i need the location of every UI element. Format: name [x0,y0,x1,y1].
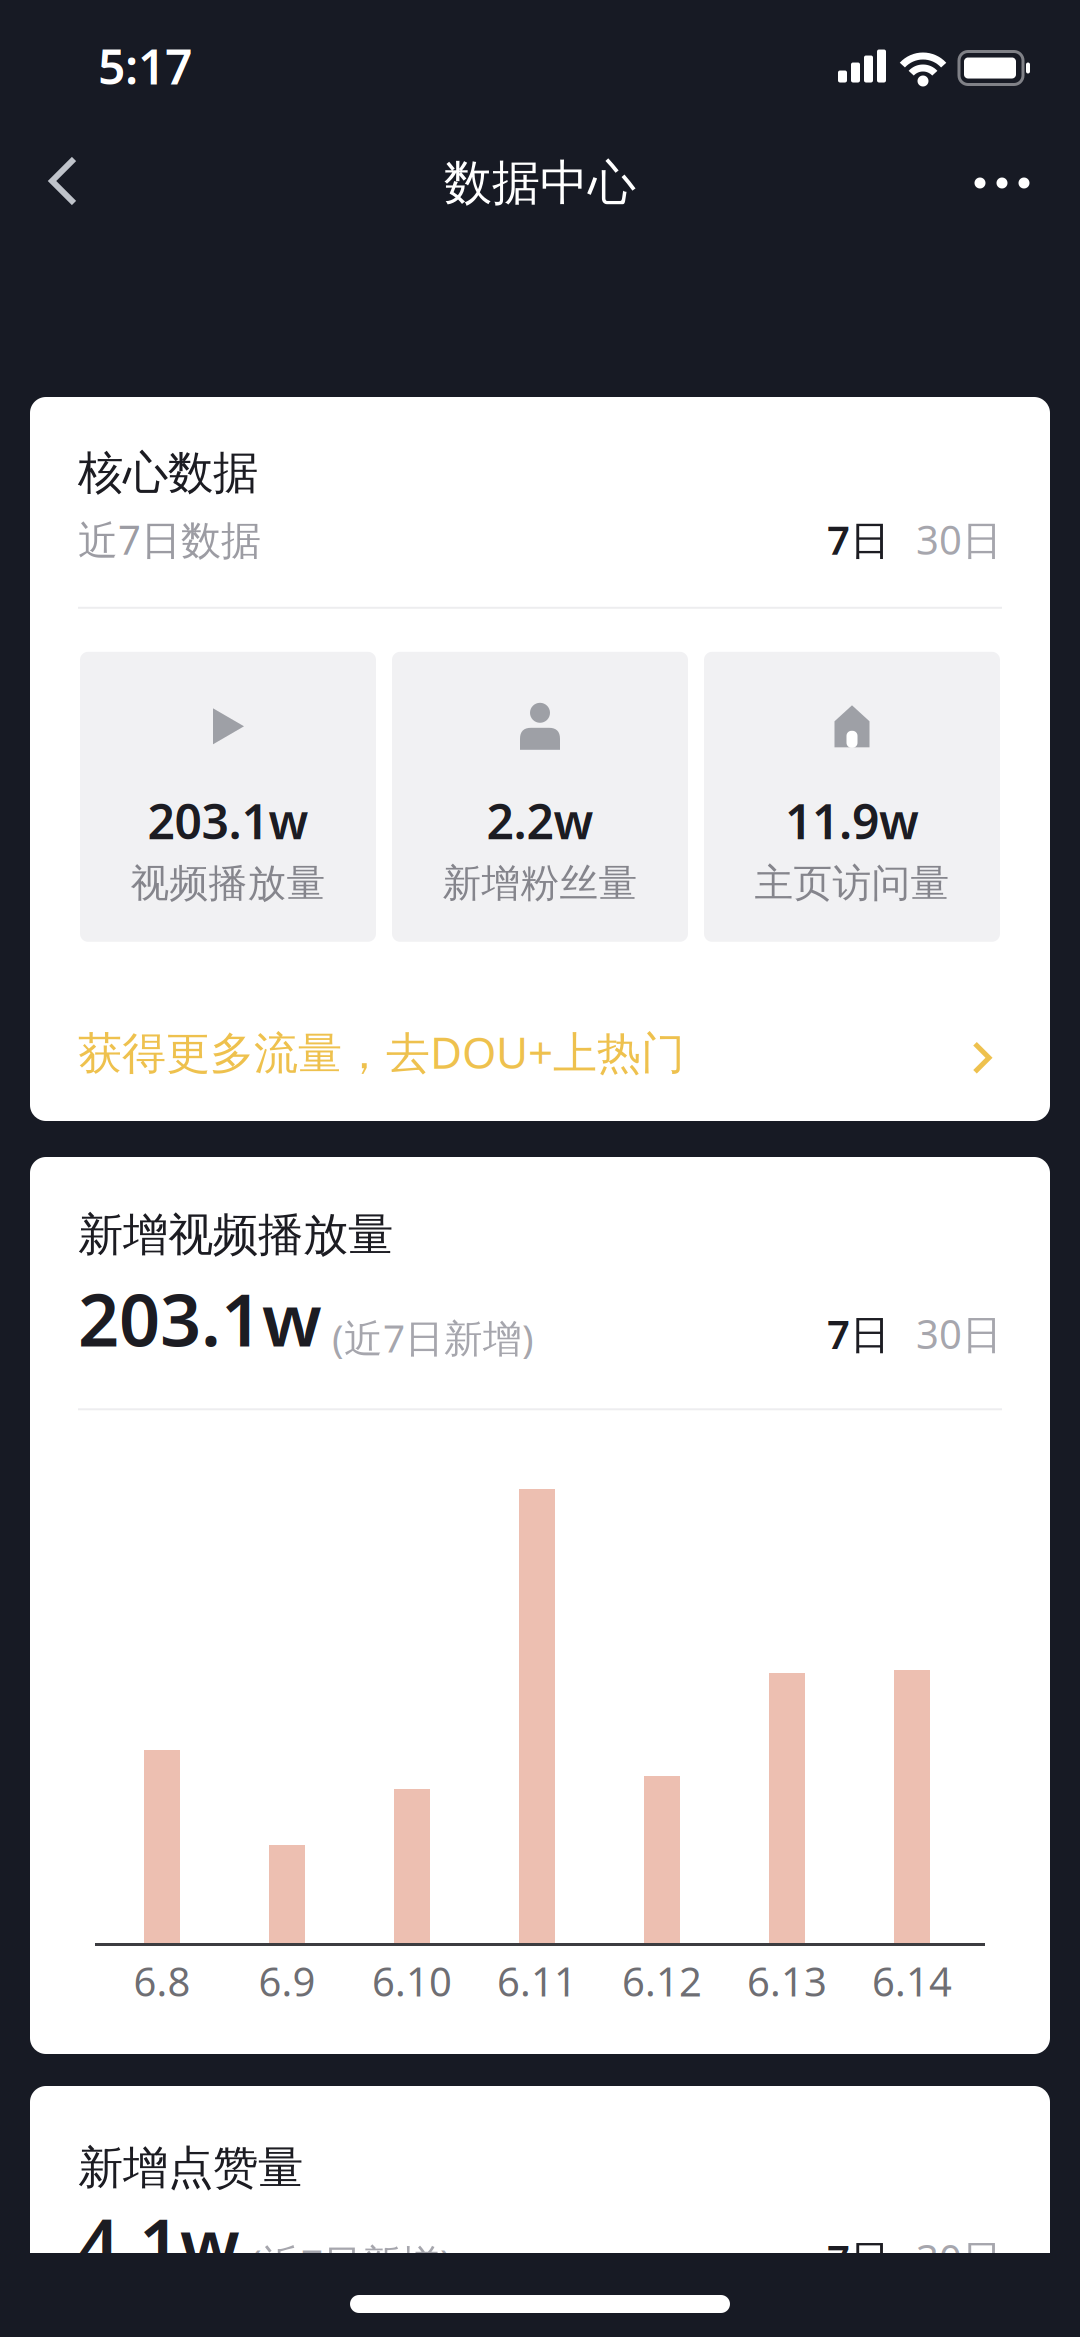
staticText: 203.1w [147,789,308,852]
staticText: 4.1w [78,2196,240,2291]
staticText: 11.9w [785,789,919,852]
button[interactable]: 30日 [890,1277,1002,1360]
button[interactable]: 7日 [827,2202,890,2285]
button[interactable]: 30日 [890,2202,1002,2285]
button[interactable]: 获得更多流量，去DOU+上热门 [30,1023,1050,1081]
staticText: (近7日新增) [332,1312,534,1363]
button[interactable]: 30日 [890,513,1002,566]
staticText: 30日 [916,513,1002,566]
staticText: 5:17 [98,34,192,98]
staticText: 7日 [827,513,890,566]
staticText: 30日 [916,1307,1002,1360]
staticText: 核心数据 [78,445,258,501]
staticText: 6.13 [747,1954,827,2007]
staticText: 6.11 [497,1954,577,2007]
staticText: 新增视频播放量 [78,1207,393,1263]
button[interactable]: 7日 [827,1277,890,1360]
staticText: 新增点赞量 [78,2140,303,2196]
staticText: 6.12 [622,1954,702,2007]
staticText: 6.14 [872,1954,952,2007]
staticText: 203.1w [78,1271,322,1366]
button[interactable]: Back [42,151,102,211]
staticText: 视频播放量 [130,859,325,907]
staticText: 主页访问量 [754,859,949,907]
staticText: 30日 [916,2232,1002,2285]
staticText: 7日 [827,1307,890,1360]
staticText: 近7日数据 [78,513,261,566]
staticText: 7日 [827,2232,890,2285]
staticText: 获得更多流量，去DOU+上热门 [78,1023,685,1081]
button[interactable]: 7日 [827,513,890,566]
staticText: 新增粉丝量 [442,859,637,907]
staticText: 2.2w [486,789,593,852]
button[interactable]: More [969,163,1035,203]
staticText: (近7日新增) [250,2237,452,2288]
staticText: 6.8 [133,1954,190,2007]
staticText: 6.9 [258,1954,315,2007]
staticText: 6.10 [372,1954,452,2007]
staticText: 数据中心 [444,153,636,212]
